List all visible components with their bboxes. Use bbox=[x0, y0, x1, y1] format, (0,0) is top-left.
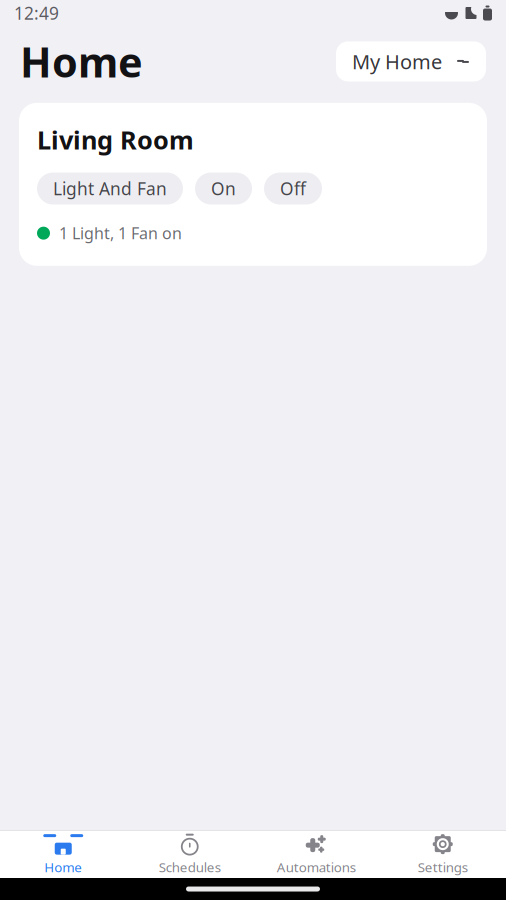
button[interactable]: Schedules bbox=[126, 831, 253, 878]
staticText: Settings bbox=[418, 858, 468, 876]
staticText: Schedules bbox=[159, 858, 221, 876]
staticText: Home bbox=[44, 858, 82, 876]
staticText: My Home bbox=[352, 48, 442, 75]
staticText: Home bbox=[20, 34, 143, 89]
button[interactable]: Light And Fan bbox=[37, 172, 183, 204]
button[interactable]: Automations bbox=[253, 831, 379, 878]
button[interactable]: Off bbox=[264, 172, 322, 204]
staticText: On bbox=[211, 177, 236, 200]
staticText: Off bbox=[280, 177, 306, 200]
button[interactable]: Settings bbox=[379, 831, 506, 878]
staticText: Automations bbox=[277, 858, 356, 876]
button[interactable]: My Home bbox=[336, 41, 486, 81]
staticText: 1 Light, 1 Fan on bbox=[59, 222, 182, 244]
staticText: Light And Fan bbox=[53, 177, 167, 200]
button[interactable]: On bbox=[195, 172, 252, 204]
staticText: Living Room bbox=[37, 123, 194, 156]
button[interactable]: Home bbox=[0, 831, 126, 878]
staticText: 12:49 bbox=[14, 1, 59, 24]
